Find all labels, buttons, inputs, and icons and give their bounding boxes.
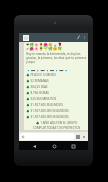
staticText: 🌲 364,25 DIAS: [26, 85, 48, 89]
staticText: 🌲 525.960 MINUTOS: [26, 97, 57, 101]
staticText: ❤️🌿🌸🌻🌺🌼🍃🌹: [26, 42, 63, 46]
button[interactable]: Home: [50, 142, 58, 150]
staticText: 🌲 31.557.600.000 SEGUNDOS: [26, 115, 69, 119]
staticText: 🌲 31.557.600.000 SEGUNDOS: [26, 109, 69, 113]
staticText: 🌲 FELICES 12 MESES: [26, 73, 56, 77]
button[interactable]: Voice message: [81, 134, 87, 140]
button[interactable]: Recents: [69, 142, 77, 150]
staticText: 🌲 31.557.600 SEGUNDOS: [26, 103, 63, 107]
button[interactable]: Attach: [75, 34, 82, 41]
staticText: 🌲 8.766 HORAS: [26, 91, 49, 95]
staticText: ✔️🌺🌸🌻🌱🌿🌼🍀: [26, 46, 63, 50]
button[interactable]: ❤️🌿🌸🌻🌺🌼🍃🌹: [24, 42, 88, 130]
button[interactable]: Camera: [75, 134, 81, 140]
staticText: Hoy te mando la bienvenida, te doy las g…: [26, 52, 87, 64]
button[interactable]: [20, 133, 75, 140]
staticText: 🌲 1 AÑO AQUI EN EL GRUPO CUMPLIR TODAS T…: [26, 121, 87, 130]
staticText: 🔹➖🔹➖🔹➖🔹➖🔹: [26, 68, 69, 72]
button[interactable]: Back: [30, 142, 38, 150]
staticText: 🌲 52 SEMANAS: [26, 79, 49, 83]
button[interactable]: Contact: [23, 35, 29, 41]
button[interactable]: More options: [82, 35, 87, 40]
